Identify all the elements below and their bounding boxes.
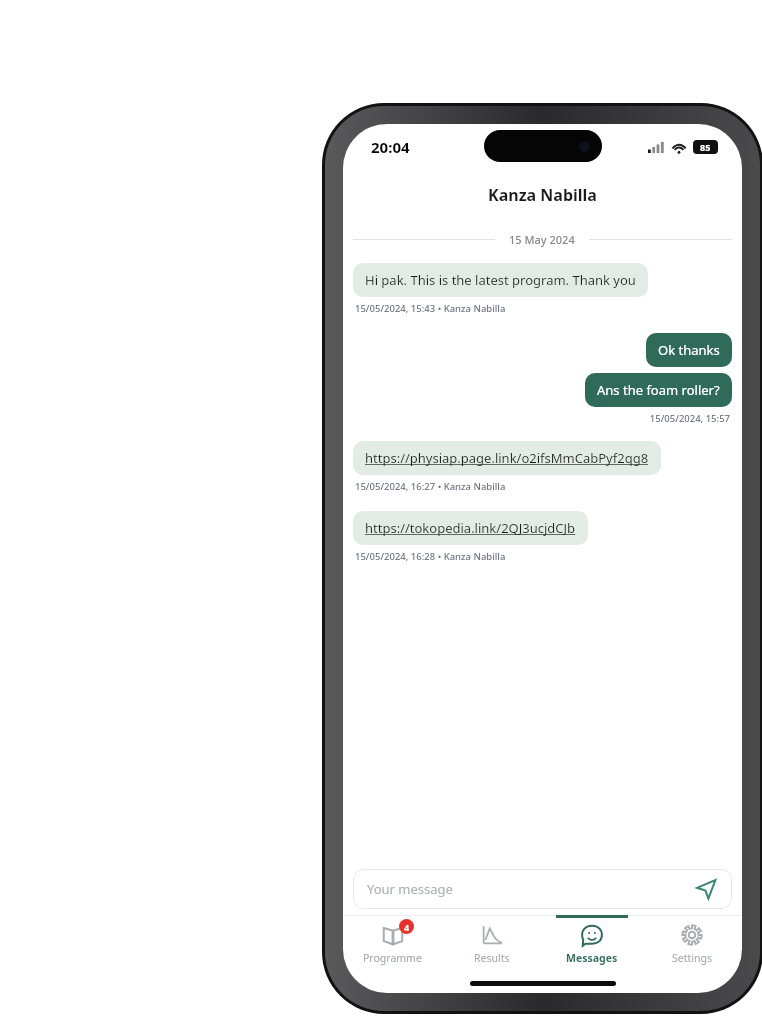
staticText: https://physiap.page.link/o2ifsMmCabPyf2… [365, 449, 649, 467]
button[interactable]: Hi pak. This is the latest program. Than… [353, 263, 648, 297]
staticText: Kanza Nabilla [343, 184, 742, 206]
button[interactable]: Your message [353, 869, 732, 909]
button[interactable]: Results [442, 915, 542, 973]
button[interactable]: Ans the foam roller? [585, 373, 732, 407]
button[interactable]: 4 [343, 915, 442, 973]
staticText: Results [474, 951, 510, 965]
staticText: 15/05/2024, 16:27 • Kanza Nabilla [355, 480, 506, 493]
staticText: Your message [367, 880, 694, 898]
staticText: https://tokopedia.link/2QJ3ucjdCJb [365, 519, 576, 537]
button[interactable]: Settings [642, 915, 742, 973]
staticText: 15 May 2024 [509, 232, 575, 247]
staticText: 15/05/2024, 15:57 [353, 412, 730, 425]
staticText: 20:04 [371, 137, 410, 157]
button[interactable]: Messages [542, 915, 642, 973]
staticText: Ans the foam roller? [597, 381, 720, 399]
staticText: Programme [363, 951, 422, 965]
staticText: Settings [672, 951, 712, 965]
button[interactable]: Ok thanks [646, 333, 732, 367]
staticText: Messages [566, 951, 618, 965]
button[interactable]: Send [694, 877, 718, 901]
staticText: 85 [700, 141, 711, 153]
staticText: Ok thanks [658, 341, 720, 359]
staticText: 15/05/2024, 15:43 • Kanza Nabilla [355, 302, 506, 315]
button[interactable]: https://tokopedia.link/2QJ3ucjdCJb [353, 511, 588, 545]
staticText: 4 [404, 921, 410, 933]
staticText: 15/05/2024, 16:28 • Kanza Nabilla [355, 550, 506, 563]
staticText: Hi pak. This is the latest program. Than… [365, 271, 636, 289]
button[interactable]: https://physiap.page.link/o2ifsMmCabPyf2… [353, 441, 661, 475]
